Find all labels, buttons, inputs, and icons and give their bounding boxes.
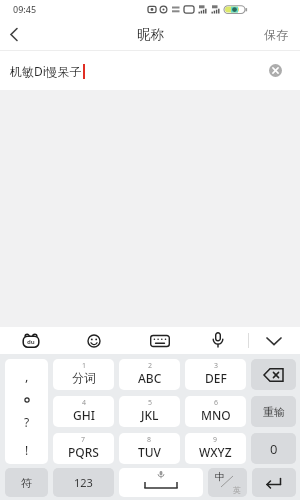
staticText: 英 — [233, 485, 241, 495]
button[interactable]: 重输 — [251, 396, 296, 427]
staticText: ! — [25, 442, 29, 458]
staticText: WXYZ — [199, 444, 232, 460]
staticText: 5 — [148, 398, 153, 408]
staticText: 机敏Di慢呆子 — [10, 63, 82, 79]
staticText: PQRS — [68, 444, 99, 460]
staticText: ABC — [138, 370, 162, 386]
button[interactable] — [119, 468, 203, 497]
staticText: 重输 — [263, 405, 285, 419]
button[interactable]: 5 — [119, 396, 180, 427]
staticText: 9 — [213, 435, 218, 445]
button[interactable]: 符 — [5, 468, 48, 497]
button[interactable] — [269, 64, 282, 77]
staticText: JKL — [141, 407, 159, 423]
staticText: 123 — [74, 475, 93, 490]
button[interactable]: 保存 — [264, 27, 300, 42]
button[interactable]: 9 — [185, 433, 246, 464]
staticText: TUV — [138, 444, 161, 460]
button[interactable]: 6 — [185, 396, 246, 427]
button[interactable]: 7 — [53, 433, 114, 464]
button[interactable]: 8 — [119, 433, 180, 464]
staticText: , — [25, 367, 29, 385]
staticText: 保存 — [264, 27, 288, 42]
staticText: 分词 — [72, 370, 96, 385]
staticText: 符 — [21, 476, 32, 490]
button[interactable] — [87, 334, 101, 348]
staticText: MNO — [201, 407, 231, 423]
button[interactable]: 123 — [53, 468, 114, 497]
staticText: 09:45 — [13, 3, 37, 15]
staticText: 2 — [148, 361, 153, 371]
button[interactable]: 1 — [53, 359, 114, 390]
button[interactable]: , — [5, 359, 48, 464]
staticText: 4 — [82, 398, 87, 408]
staticText: 昵称 — [137, 26, 164, 43]
button[interactable] — [251, 359, 296, 390]
staticText: ? — [24, 414, 30, 430]
staticText: du — [27, 338, 35, 346]
staticText: 3 — [214, 361, 219, 371]
staticText: GHI — [73, 407, 95, 423]
staticText: 8 — [147, 435, 152, 445]
staticText: 0 — [270, 440, 278, 458]
button[interactable]: 2 — [119, 359, 180, 390]
button[interactable]: 3 — [185, 359, 246, 390]
button[interactable] — [150, 334, 170, 348]
staticText: 7 — [81, 435, 86, 445]
button[interactable] — [263, 333, 285, 349]
staticText: 6 — [214, 398, 219, 408]
button[interactable] — [211, 332, 225, 349]
button[interactable]: du — [22, 333, 40, 349]
button[interactable] — [0, 18, 30, 51]
button[interactable] — [252, 468, 296, 497]
button[interactable]: 0 — [251, 433, 296, 464]
button[interactable]: 4 — [53, 396, 114, 427]
button[interactable]: 中 — [208, 468, 247, 497]
staticText: 中 — [215, 470, 225, 483]
staticText: 1 — [82, 361, 87, 371]
staticText: DEF — [205, 370, 227, 386]
